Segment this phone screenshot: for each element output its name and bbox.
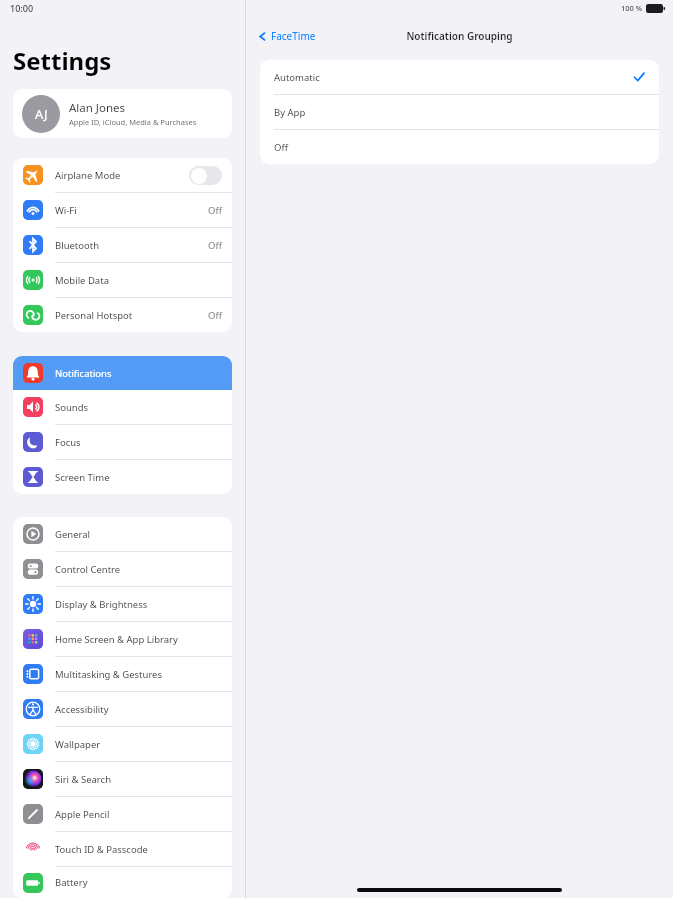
button[interactable]: Screen Time [13, 460, 232, 494]
staticText: Touch ID & Passcode [55, 843, 148, 856]
button[interactable]: Siri & Search [13, 762, 232, 796]
button[interactable]: Airplane Mode toggle [189, 166, 222, 185]
staticText: By App [274, 106, 306, 119]
button[interactable]: Personal Hotspot [13, 298, 232, 332]
button[interactable]: Accessibility [13, 692, 232, 726]
staticText: FaceTime [271, 29, 316, 43]
staticText: Off [274, 141, 288, 154]
staticText: Apple ID, iCloud, Media & Purchases [69, 117, 197, 127]
button[interactable]: Automatic [260, 60, 659, 94]
staticText: 10:00 [10, 2, 34, 14]
button[interactable]: FaceTime [254, 27, 320, 45]
staticText: Siri & Search [55, 773, 112, 786]
staticText: Mobile Data [55, 274, 109, 287]
staticText: Accessibility [55, 703, 109, 716]
staticText: Home Screen & App Library [55, 633, 178, 646]
staticText: Battery [55, 876, 88, 889]
staticText: Settings [13, 44, 112, 77]
staticText: Screen Time [55, 471, 110, 484]
staticText: Off [208, 239, 222, 252]
button[interactable]: General [13, 517, 232, 551]
button[interactable]: Touch ID & Passcode [13, 832, 232, 866]
staticText: Notification Grouping [406, 29, 513, 43]
staticText: Multitasking & Gestures [55, 668, 163, 681]
staticText: 100 % [621, 3, 643, 13]
button[interactable]: Multitasking & Gestures [13, 657, 232, 691]
button[interactable]: By App [260, 95, 659, 129]
staticText: Display & Brightness [55, 598, 148, 611]
button[interactable]: Battery [13, 867, 232, 898]
button[interactable]: AJ [13, 89, 232, 138]
button[interactable]: Focus [13, 425, 232, 459]
button[interactable]: Home Screen & App Library [13, 622, 232, 656]
button[interactable]: Bluetooth [13, 228, 232, 262]
staticText: Off [208, 309, 222, 322]
staticText: Sounds [55, 401, 89, 414]
staticText: AJ [35, 105, 48, 123]
button[interactable]: Wi-Fi [13, 193, 232, 227]
button[interactable]: Airplane Mode [13, 158, 232, 192]
staticText: Airplane Mode [55, 169, 121, 182]
button[interactable]: Display & Brightness [13, 587, 232, 621]
button[interactable]: Mobile Data [13, 263, 232, 297]
staticText: Bluetooth [55, 239, 100, 252]
button[interactable]: Notifications [13, 356, 232, 390]
button[interactable]: Off [260, 130, 659, 164]
staticText: Automatic [274, 71, 320, 84]
staticText: General [55, 528, 91, 541]
staticText: Wi-Fi [55, 204, 77, 217]
staticText: Notifications [55, 367, 112, 380]
staticText: Wallpaper [55, 738, 101, 751]
button[interactable]: Control Centre [13, 552, 232, 586]
staticText: Focus [55, 436, 81, 449]
staticText: Off [208, 204, 222, 217]
button[interactable]: Apple Pencil [13, 797, 232, 831]
button[interactable]: Wallpaper [13, 727, 232, 761]
staticText: Control Centre [55, 563, 121, 576]
button[interactable]: Sounds [13, 390, 232, 424]
staticText: Alan Jones [69, 100, 126, 116]
staticText: Apple Pencil [55, 808, 110, 821]
staticText: Personal Hotspot [55, 309, 133, 322]
